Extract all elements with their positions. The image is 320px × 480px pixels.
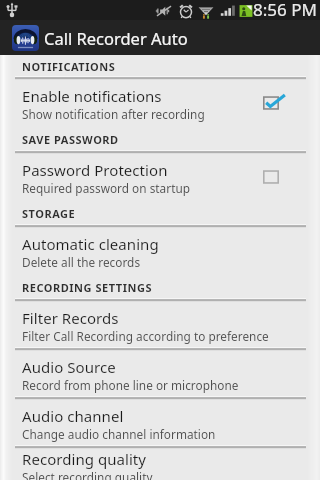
staticText: NOTIFICATIONS bbox=[22, 59, 116, 74]
staticText: RECORDING SETTINGS bbox=[22, 280, 152, 295]
staticText: Audio channel bbox=[22, 406, 124, 426]
button[interactable]: Audio channel bbox=[0, 398, 320, 447]
staticText: Change audio channel information bbox=[22, 426, 216, 442]
button[interactable]: Password Protection bbox=[0, 152, 320, 201]
button[interactable]: Audio Source bbox=[0, 349, 320, 398]
button[interactable]: Disabled bbox=[261, 165, 287, 189]
staticText: 8:56 PM bbox=[253, 0, 317, 18]
staticText: SAVE PASSWORD bbox=[22, 132, 119, 147]
staticText: Required password on startup bbox=[22, 180, 190, 196]
staticText: Recording quality bbox=[22, 449, 147, 469]
staticText: STORAGE bbox=[22, 206, 76, 221]
button[interactable]: Enabled bbox=[261, 91, 287, 115]
staticText: Select recording quality bbox=[22, 469, 153, 480]
button[interactable]: Enable notifications bbox=[0, 78, 320, 127]
staticText: Call Recorder Auto bbox=[44, 27, 188, 49]
staticText: Record from phone line or microphone bbox=[22, 377, 239, 393]
staticText: Filter Records bbox=[22, 308, 119, 328]
staticText: Audio Source bbox=[22, 357, 116, 377]
button[interactable]: Filter Records bbox=[0, 300, 320, 349]
staticText: Automatic cleaning bbox=[22, 234, 159, 254]
button[interactable]: App icon bbox=[12, 25, 39, 51]
staticText: Enable notifications bbox=[22, 86, 162, 106]
button[interactable]: Recording quality bbox=[0, 447, 320, 480]
staticText: Password Protection bbox=[22, 160, 168, 180]
staticText: Show notification after recording bbox=[22, 106, 205, 122]
staticText: Filter Call Recording according to prefe… bbox=[22, 328, 269, 344]
button[interactable]: Automatic cleaning bbox=[0, 226, 320, 275]
staticText: Delete all the records bbox=[22, 254, 141, 270]
